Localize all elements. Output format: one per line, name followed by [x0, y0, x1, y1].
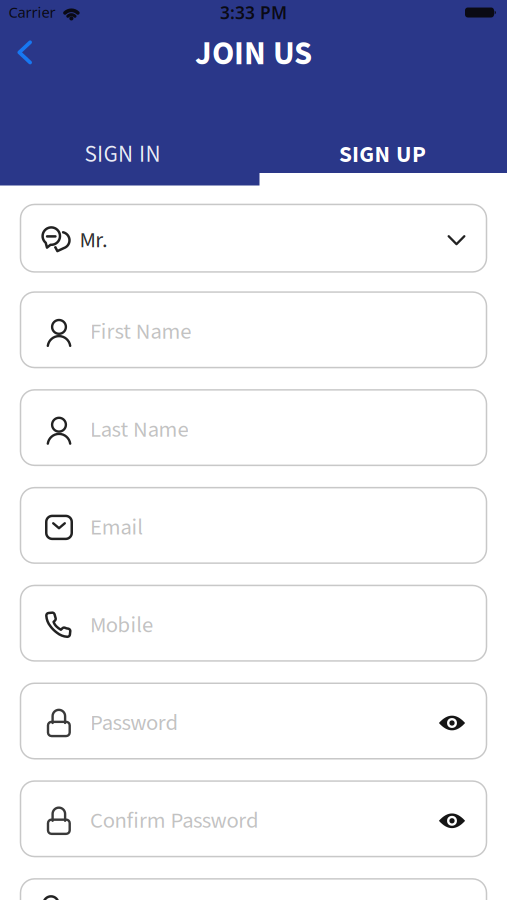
staticText: Mobile: [90, 609, 153, 641]
staticText: SIGN IN: [85, 138, 161, 171]
staticText: Confirm Password: [90, 805, 259, 837]
staticText: JOIN US: [195, 31, 312, 77]
button[interactable]: First Name: [20, 292, 486, 368]
staticText: Password: [90, 707, 179, 739]
button[interactable]: Mr.: [20, 204, 486, 272]
button[interactable]: Show confirm password: [438, 812, 465, 829]
button[interactable]: SIGN UP: [262, 134, 502, 176]
button[interactable]: Show password: [438, 714, 465, 731]
staticText: Email: [90, 511, 143, 544]
button[interactable]: Last Name: [20, 390, 486, 465]
staticText: Last Name: [90, 413, 188, 446]
staticText: Mr.: [79, 224, 108, 256]
staticText: Carrier: [8, 2, 55, 22]
button[interactable]: Mobile: [20, 585, 486, 661]
staticText: SIGN UP: [339, 138, 426, 171]
staticText: 3:33 PM: [220, 1, 287, 24]
button[interactable]: Confirm Password: [20, 781, 486, 856]
button[interactable]: Back: [17, 40, 32, 64]
staticText: First Name: [90, 316, 191, 348]
button[interactable]: Date of Birth: [20, 879, 486, 900]
button[interactable]: Email: [20, 488, 486, 563]
button[interactable]: Password: [20, 683, 486, 759]
button[interactable]: SIGN IN: [3, 133, 243, 175]
